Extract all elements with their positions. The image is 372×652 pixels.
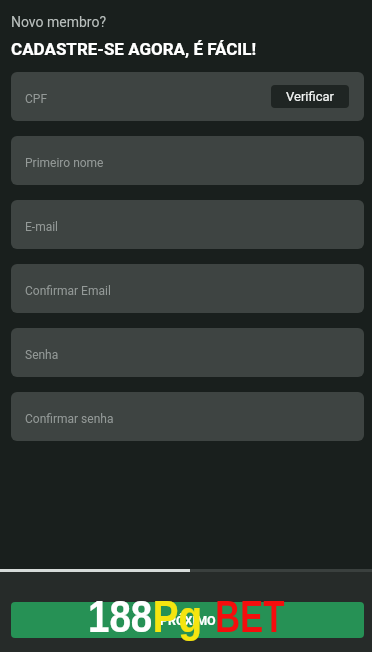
staticText: Confirmar Email — [25, 284, 111, 298]
staticText: 188 — [88, 592, 153, 641]
staticText: BET — [215, 592, 284, 641]
button[interactable]: CPF — [11, 72, 364, 121]
button[interactable]: Verificar — [271, 85, 349, 108]
staticText: Verificar — [286, 89, 334, 104]
staticText: E-mail — [25, 220, 59, 234]
button[interactable]: Primeiro nome — [11, 136, 364, 185]
staticText: Confirmar senha — [25, 412, 114, 426]
button[interactable]: Confirmar Email — [11, 264, 364, 313]
staticText: CPF — [25, 92, 48, 106]
staticText: Pg — [153, 592, 203, 641]
staticText: Primeiro nome — [25, 156, 104, 170]
staticText: Novo membro? — [11, 14, 107, 30]
button[interactable]: PRÓXIMO — [11, 602, 364, 638]
button[interactable]: Confirmar senha — [11, 392, 364, 441]
staticText: CADASTRE-SE AGORA, É FÁCIL! — [11, 39, 257, 59]
button[interactable]: E-mail — [11, 200, 364, 249]
staticText: Senha — [25, 348, 59, 362]
button[interactable]: Senha — [11, 328, 364, 377]
staticText: PRÓXIMO — [160, 613, 216, 628]
